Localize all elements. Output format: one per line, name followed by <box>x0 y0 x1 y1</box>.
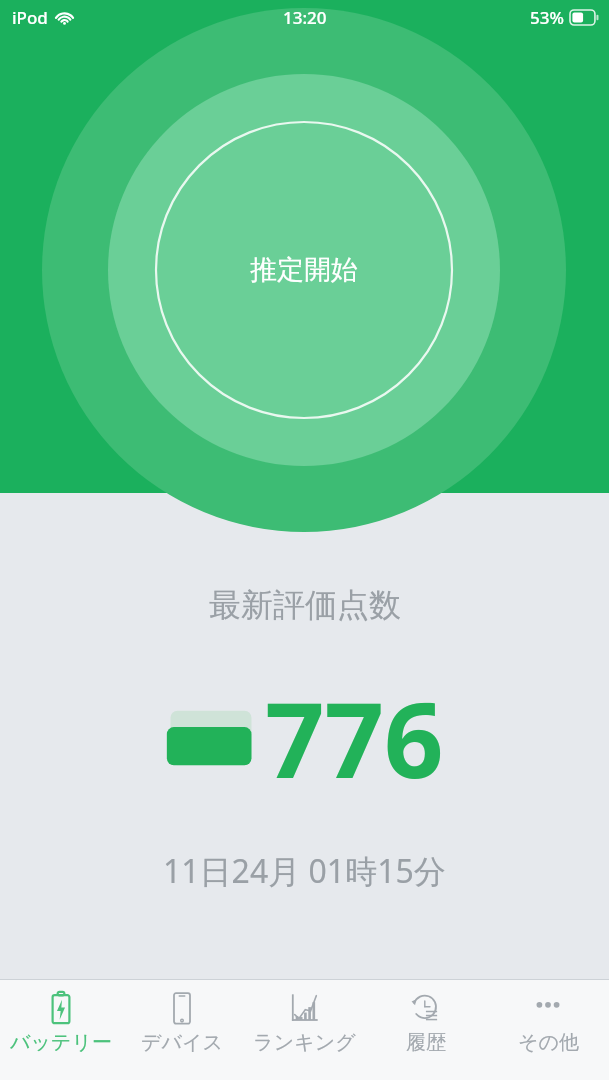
button[interactable]: History <box>365 980 487 1080</box>
button[interactable]: Battery <box>0 980 121 1080</box>
button[interactable]: Ranking <box>243 980 365 1080</box>
staticText: バッテリー <box>10 1030 112 1055</box>
staticText: 最新評価点数 <box>209 585 401 625</box>
staticText: 53% <box>530 6 564 29</box>
staticText: 推定開始 <box>250 253 358 287</box>
staticText: 履歴 <box>406 1030 446 1055</box>
staticText: 776 <box>265 667 444 809</box>
button[interactable]: 推定開始 <box>156 122 452 418</box>
staticText: その他 <box>518 1030 579 1055</box>
staticText: ランキング <box>253 1030 356 1055</box>
button[interactable]: Device <box>121 980 243 1080</box>
button[interactable]: More <box>487 980 609 1080</box>
staticText: iPod <box>12 6 48 29</box>
staticText: 11日24月 01時15分 <box>163 849 446 893</box>
staticText: デバイス <box>141 1030 223 1055</box>
staticText: 13:20 <box>283 6 327 29</box>
